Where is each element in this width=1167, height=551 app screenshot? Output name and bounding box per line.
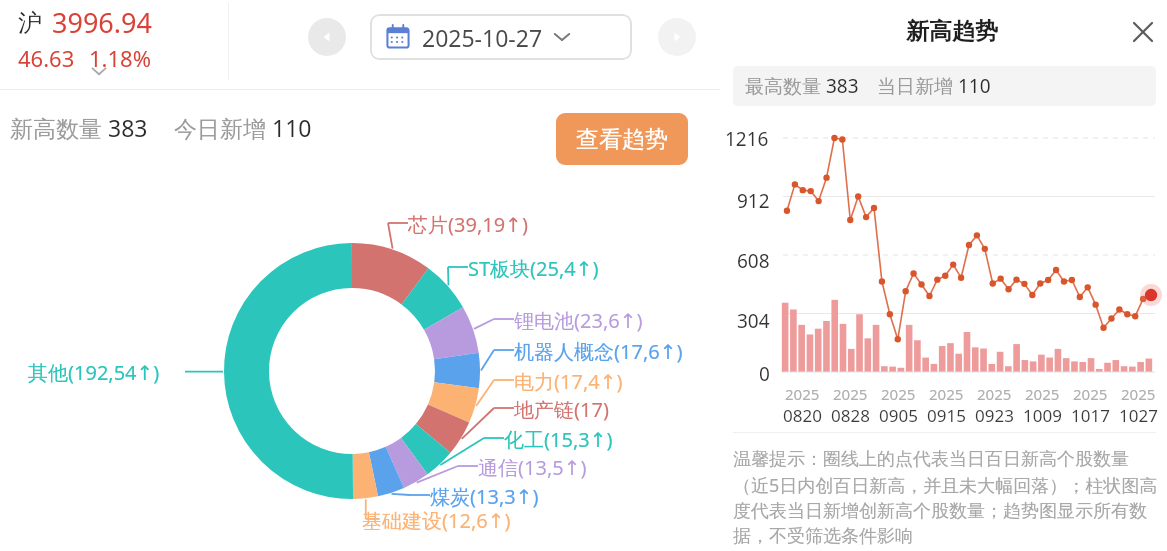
button[interactable]: 前一日 [308,18,346,56]
staticText: 2025 [929,384,964,404]
staticText: 912 [737,188,770,214]
staticText: 2025-10-27 [422,22,543,53]
staticText: 608 [737,248,770,274]
staticText: 2025 [1121,384,1156,404]
staticText: 0923 [975,404,1014,427]
staticText: 2025 [833,384,868,404]
staticText: 温馨提示：圈线上的点代表当日百日新高个股数量（近5日内创百日新高，并且未大幅回落… [733,448,1159,547]
staticText: 新高趋势 [906,17,998,46]
staticText: 2025 [881,384,916,404]
staticText: 今日新增 [174,112,272,143]
staticText: 沪 [18,8,42,38]
staticText: 0915 [927,404,966,427]
staticText: ST板块(25,4↑) [468,255,599,282]
staticText: 通信(13,5↑) [478,454,587,481]
staticText: 3996.94 [52,4,152,41]
button[interactable]: 关闭 [1123,12,1163,52]
staticText: 110 [958,73,991,99]
staticText: 新高数量 [10,112,108,143]
staticText: 2025 [977,384,1012,404]
staticText: 0905 [879,404,918,427]
staticText: 46.63 [18,43,75,73]
button[interactable]: 查看趋势 [556,113,688,165]
staticText: 383 [826,73,859,99]
staticText: 查看趋势 [576,125,668,154]
staticText: 最高数量 [745,73,826,99]
staticText: 1027 [1119,404,1158,427]
staticText: 2025 [1025,384,1060,404]
staticText: 1216 [725,126,769,152]
button[interactable]: 2025-10-27 [370,14,632,60]
staticText: 芯片(39,19↑) [408,211,528,238]
staticText: 2025 [785,384,820,404]
staticText: 0 [759,361,770,387]
button[interactable]: 展开 [86,62,112,80]
staticText: 机器人概念(17,6↑) [514,338,683,365]
staticText: 地产链(17) [514,396,609,423]
staticText: 0828 [831,404,870,427]
staticText: 383 [108,112,148,143]
staticText: 当日新增 [877,73,958,99]
staticText: 1.18% [89,43,151,73]
staticText: 2025 [1073,384,1108,404]
staticText: 电力(17,4↑) [514,368,623,395]
staticText: 1009 [1023,404,1062,427]
staticText: 304 [737,308,770,334]
staticText: 煤炭(13,3↑) [430,483,539,510]
staticText: 1017 [1071,404,1110,427]
staticText: 锂电池(23,6↑) [514,307,643,334]
staticText: 其他(192,54↑) [28,359,160,386]
staticText: 110 [272,112,312,143]
staticText: 0820 [783,404,822,427]
button[interactable]: 后一日 [658,18,696,56]
staticText: 基础建设(12,6↑) [362,507,511,534]
staticText: 化工(15,3↑) [504,426,613,453]
